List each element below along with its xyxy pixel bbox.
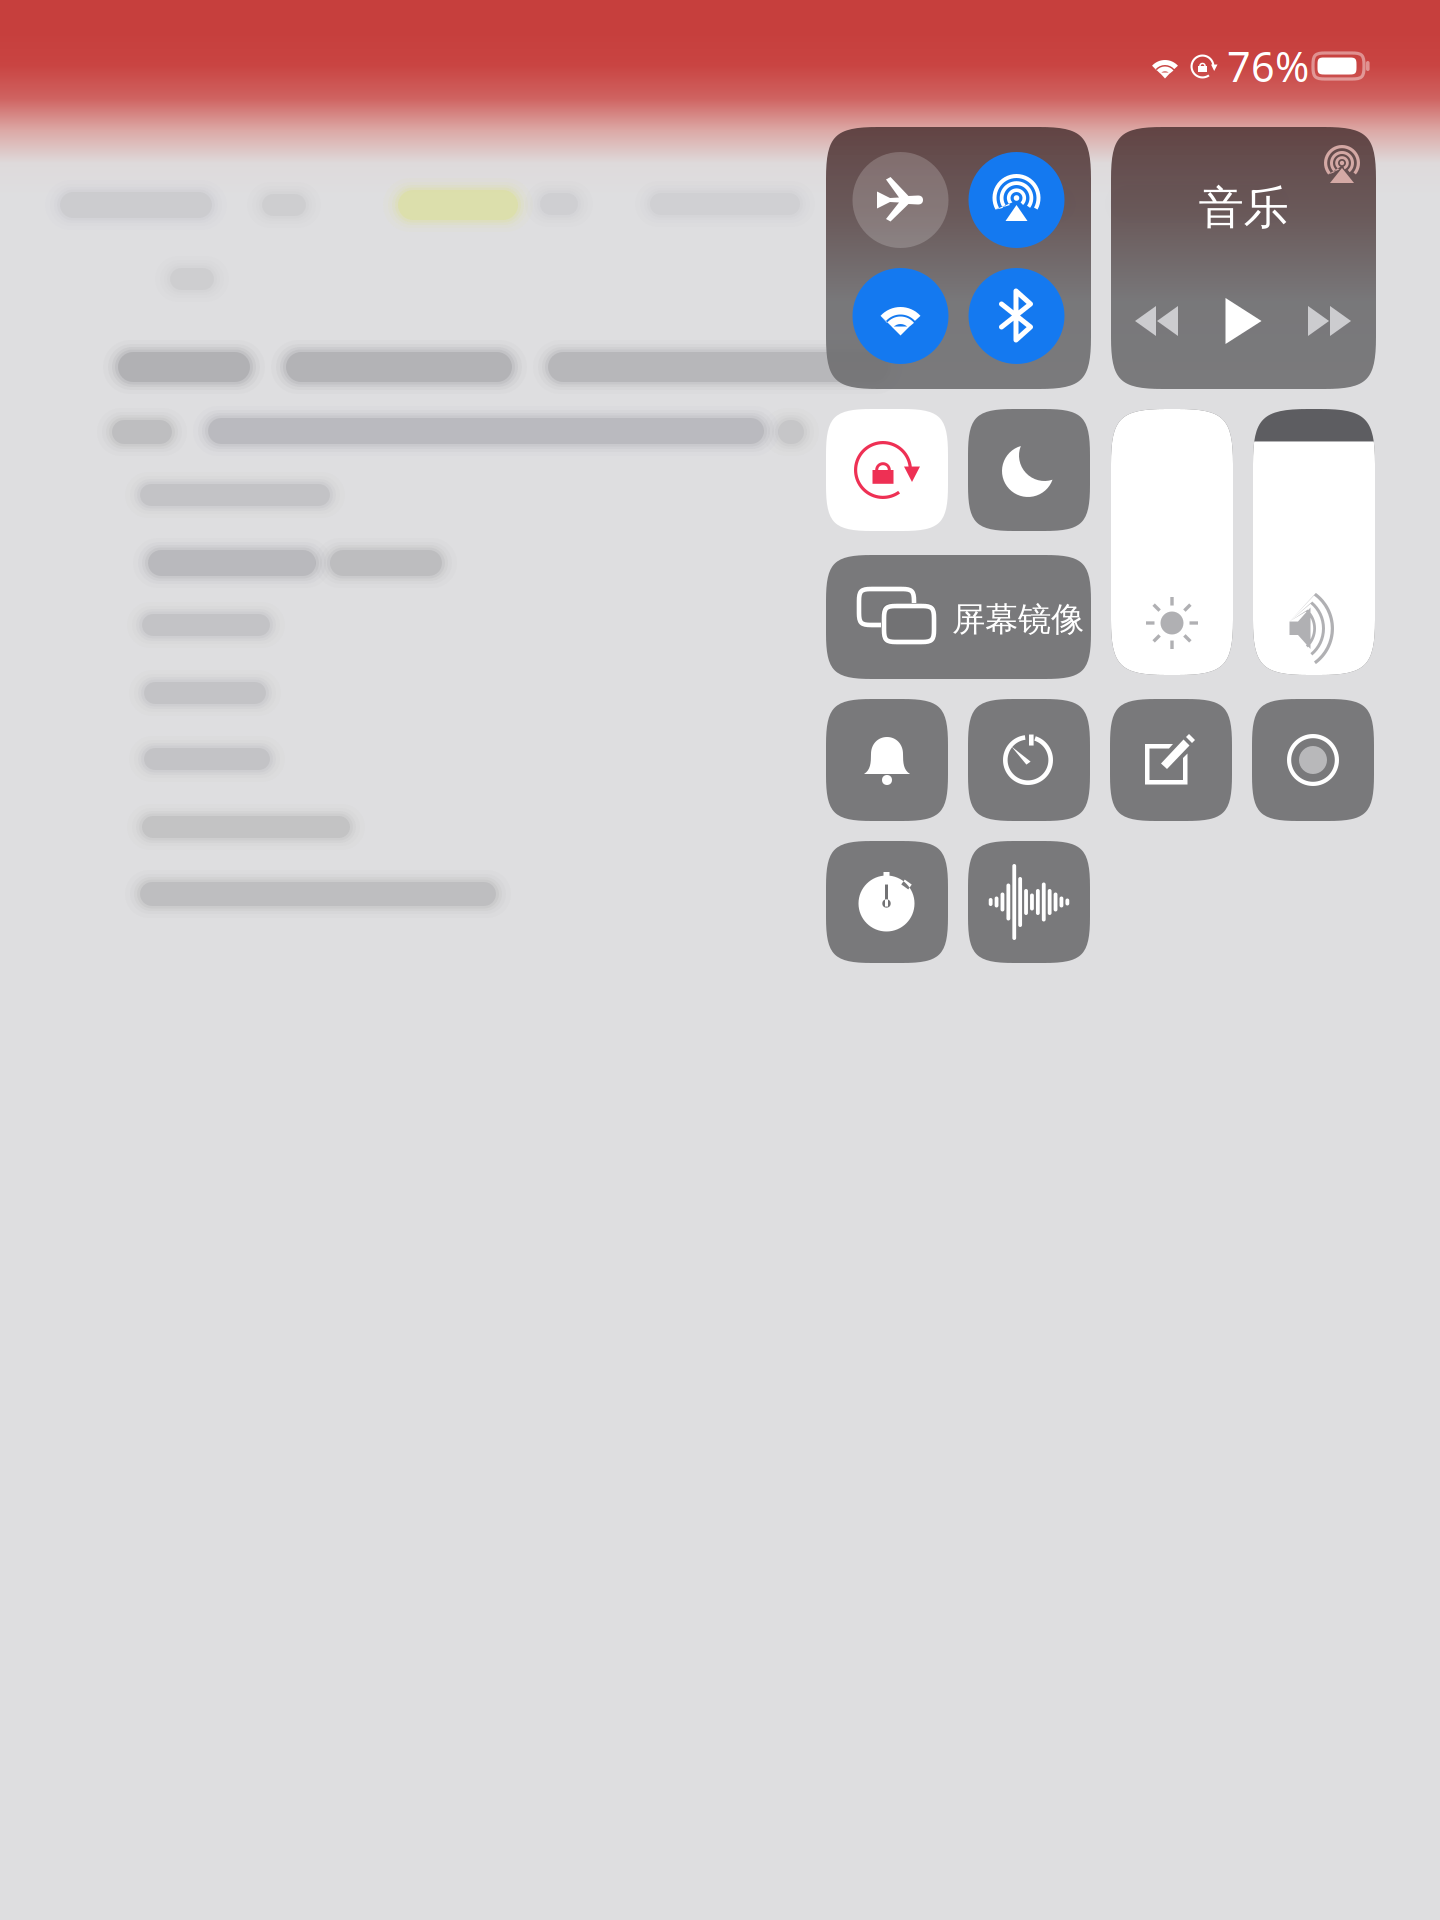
button[interactable]: AirDrop bbox=[968, 152, 1064, 248]
button[interactable]: Brightness bbox=[1111, 409, 1233, 675]
button[interactable]: AirPlay bbox=[1322, 145, 1362, 185]
button[interactable]: Wi-Fi bbox=[852, 268, 948, 364]
button[interactable]: Do Not Disturb bbox=[968, 409, 1090, 531]
button[interactable]: Screen Recording bbox=[1252, 699, 1374, 821]
button[interactable]: Alarm bbox=[826, 699, 948, 821]
button[interactable]: Bluetooth bbox=[968, 268, 1064, 364]
button[interactable]: Airplane Mode bbox=[852, 152, 948, 248]
button[interactable]: Voice Memos bbox=[968, 841, 1090, 963]
button[interactable]: Timer bbox=[968, 699, 1090, 821]
staticText: 屏幕镜像 bbox=[952, 599, 1084, 640]
button[interactable]: Screen Mirroring bbox=[826, 555, 1091, 679]
button[interactable]: Stopwatch bbox=[826, 841, 948, 963]
button[interactable]: Previous Track bbox=[1135, 305, 1179, 339]
button[interactable]: Next Track bbox=[1308, 305, 1352, 339]
staticText: 音乐 bbox=[1198, 180, 1288, 236]
button[interactable]: Rotation Lock bbox=[826, 409, 948, 531]
button[interactable]: Play bbox=[1224, 298, 1262, 346]
button[interactable]: Notes bbox=[1110, 699, 1232, 821]
staticText: 76% bbox=[1227, 39, 1309, 93]
button[interactable]: Volume bbox=[1253, 409, 1375, 675]
